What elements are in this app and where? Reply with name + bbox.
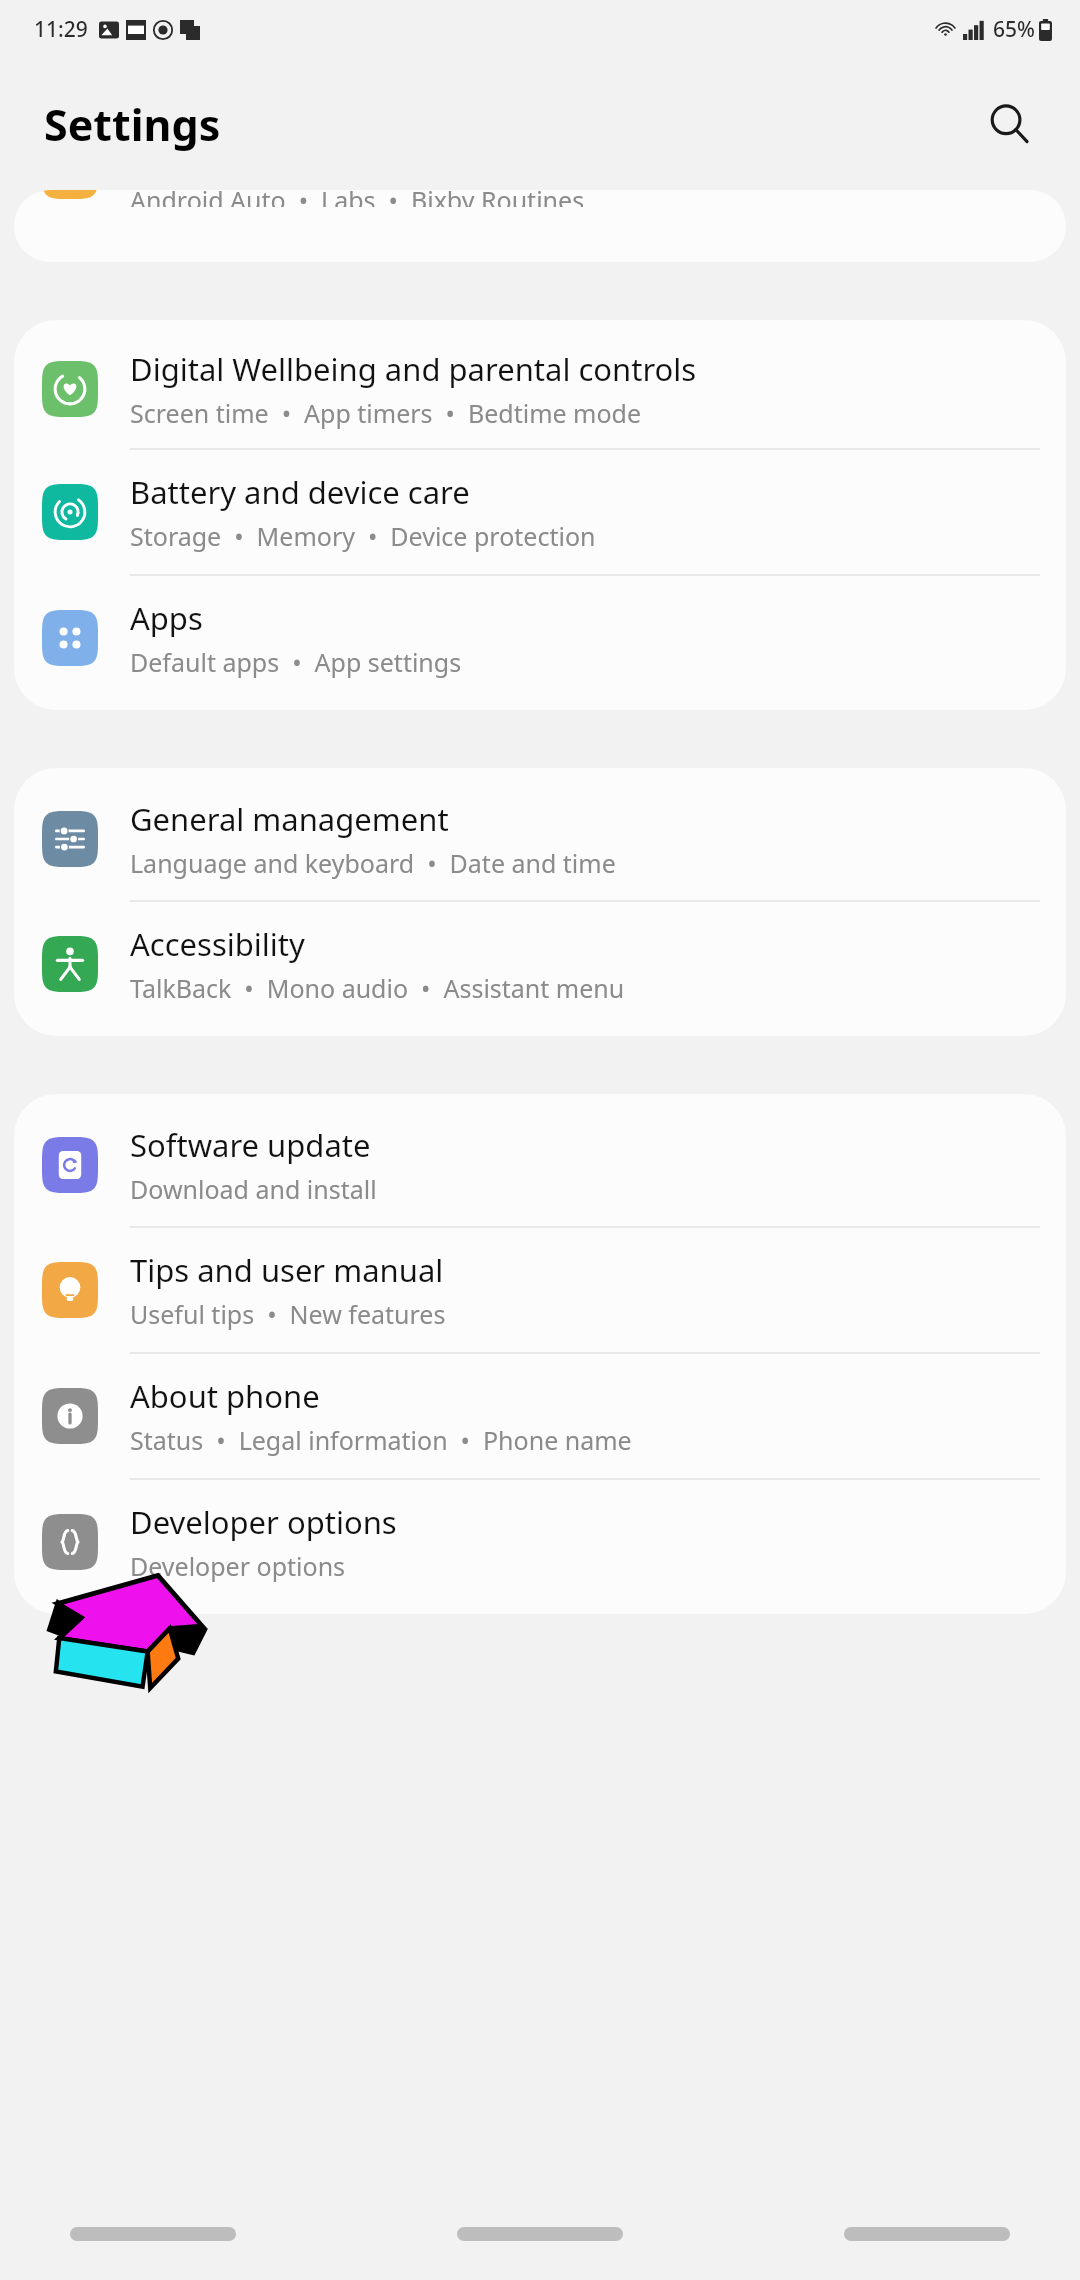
staticText: Download and install	[130, 1172, 377, 1206]
button[interactable]: Tips and user manual	[14, 1228, 1066, 1352]
button[interactable]: Advanced features	[14, 190, 1066, 207]
button[interactable]: Accessibility	[14, 902, 1066, 1026]
staticText: Software update	[130, 1124, 371, 1166]
button[interactable]: Developer options	[14, 1480, 1066, 1604]
staticText: Status • Legal information • Phone name	[130, 1423, 632, 1457]
staticText: Useful tips • New features	[130, 1297, 446, 1331]
button[interactable]: Home	[457, 2227, 623, 2241]
staticText: Default apps • App settings	[130, 645, 462, 679]
staticText: Battery and device care	[130, 471, 470, 513]
button[interactable]: Recents	[70, 2227, 236, 2241]
button[interactable]: Apps	[14, 576, 1066, 700]
button[interactable]: Digital Wellbeing and parental controls	[14, 330, 1066, 448]
button[interactable]: General management	[14, 778, 1066, 900]
staticText: Apps	[130, 597, 203, 639]
button[interactable]: Search	[978, 93, 1040, 155]
button[interactable]: Battery and device care	[14, 450, 1066, 574]
staticText: Storage • Memory • Device protection	[130, 519, 596, 553]
staticText: Developer options	[130, 1501, 397, 1543]
staticText: Accessibility	[130, 923, 305, 965]
staticText: 11:29	[34, 15, 88, 44]
staticText: 65%	[993, 15, 1035, 44]
staticText: Developer options	[130, 1549, 346, 1583]
button[interactable]: Software update	[14, 1104, 1066, 1226]
staticText: About phone	[130, 1375, 320, 1417]
staticText: Tips and user manual	[130, 1249, 444, 1291]
staticText: Android Auto • Labs • Bixby Routines	[130, 190, 585, 207]
staticText: General management	[130, 798, 449, 840]
button[interactable]: Back	[844, 2227, 1010, 2241]
staticText: Digital Wellbeing and parental controls	[130, 348, 697, 390]
staticText: Language and keyboard • Date and time	[130, 846, 616, 880]
button[interactable]: About phone	[14, 1354, 1066, 1478]
staticText: Screen time • App timers • Bedtime mode	[130, 396, 642, 430]
staticText: Settings	[44, 95, 221, 154]
staticText: TalkBack • Mono audio • Assistant menu	[130, 971, 625, 1005]
